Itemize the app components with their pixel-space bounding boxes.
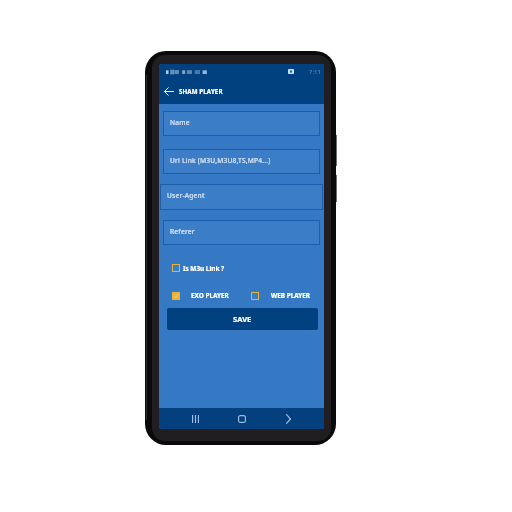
- button[interactable]: Referer: [163, 220, 320, 245]
- staticText: Is M3u Link ?: [183, 264, 225, 272]
- button[interactable]: Url Link (M3U,M3U8,TS,MP4...): [163, 149, 320, 174]
- button[interactable]: Back: [162, 84, 176, 98]
- button[interactable]: WEB PLAYER: [251, 292, 311, 300]
- button[interactable]: Is M3u Link ?: [172, 264, 225, 272]
- staticText: Url Link (M3U,M3U8,TS,MP4...): [170, 156, 271, 165]
- button[interactable]: Name: [163, 111, 320, 136]
- staticText: Referer: [170, 227, 195, 236]
- button[interactable]: Recent apps: [185, 409, 205, 429]
- staticText: User-Agent: [167, 191, 205, 200]
- staticText: Name: [170, 118, 190, 127]
- button[interactable]: Home: [232, 409, 252, 429]
- staticText: WEB PLAYER: [271, 291, 311, 299]
- button[interactable]: Back: [278, 409, 298, 429]
- staticText: SAVE: [233, 314, 252, 324]
- staticText: EXO PLAYER: [191, 291, 229, 299]
- button[interactable]: EXO PLAYER: [172, 292, 229, 300]
- button[interactable]: User-Agent: [160, 184, 323, 210]
- staticText: 7:11: [309, 68, 321, 76]
- button[interactable]: SAVE: [167, 308, 318, 330]
- staticText: SHAM PLAYER: [179, 87, 223, 95]
